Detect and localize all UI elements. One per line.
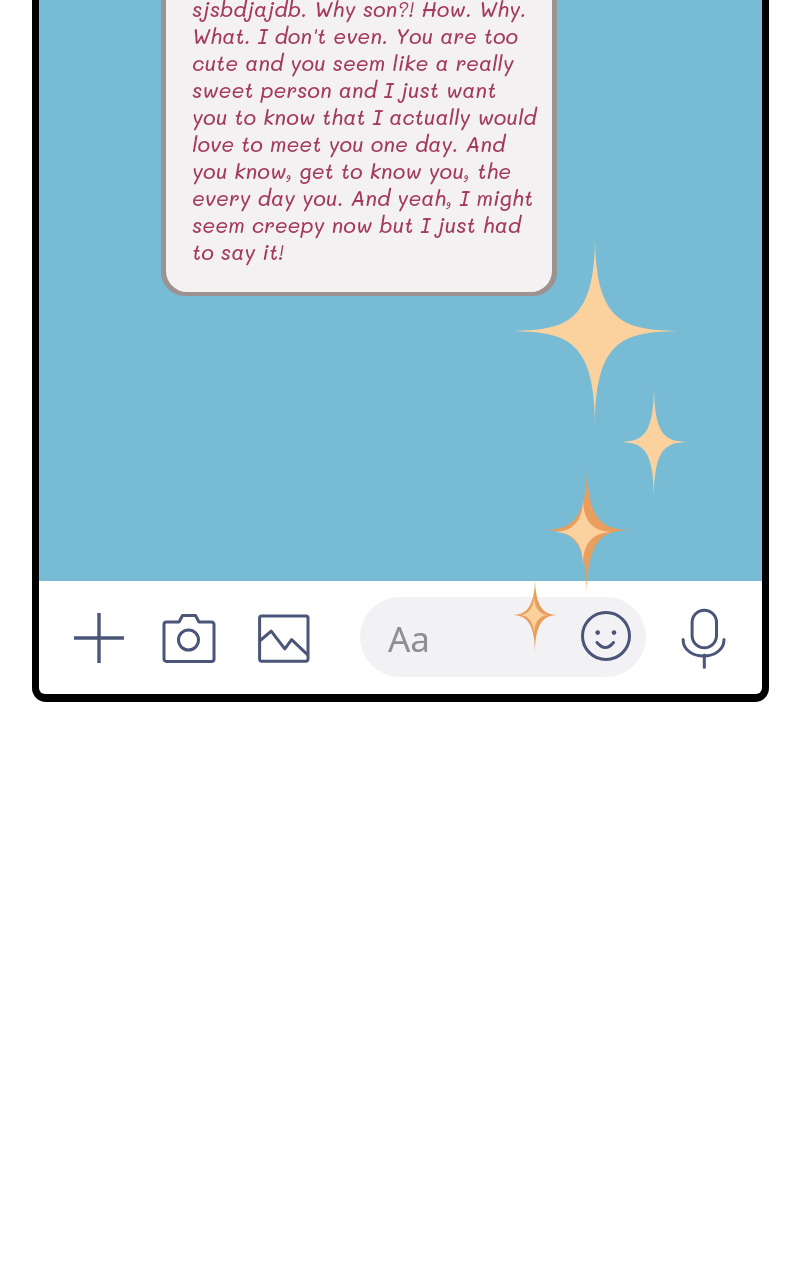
button[interactable]: sjsbdjajdb. Why son?! How. Why. What. I …: [166, 0, 552, 292]
button[interactable]: Voice message: [680, 608, 730, 658]
button[interactable]: Emoji: [581, 611, 631, 661]
button[interactable]: Aa: [360, 597, 646, 677]
staticText: Aa: [388, 615, 431, 663]
button[interactable]: Add attachment: [72, 611, 126, 665]
button[interactable]: Camera: [160, 613, 218, 671]
button[interactable]: Photo gallery: [258, 614, 310, 666]
staticText: sjsbdjajdb. Why son?! How. Why. What. I …: [192, 0, 538, 265]
